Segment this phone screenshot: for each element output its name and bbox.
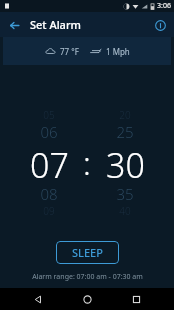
- staticText: 3:06: [157, 1, 171, 11]
- button[interactable]: Home: [76, 288, 98, 310]
- staticText: 09: [43, 204, 55, 218]
- button[interactable]: 20: [94, 108, 156, 218]
- staticText: 1 Mph: [106, 46, 130, 57]
- staticText: 25: [116, 122, 134, 142]
- button[interactable]: Back: [27, 288, 49, 310]
- button[interactable]: Info: [150, 15, 170, 35]
- staticText: 05: [43, 108, 55, 122]
- staticText: 08: [40, 184, 58, 204]
- staticText: 06: [40, 122, 58, 142]
- button[interactable]: SLEEP: [56, 241, 119, 264]
- button[interactable]: Back: [4, 15, 24, 35]
- button[interactable]: Recents: [125, 288, 147, 310]
- staticText: SLEEP: [72, 245, 103, 260]
- staticText: 40: [119, 204, 131, 218]
- staticText: 30: [106, 142, 145, 184]
- staticText: 20: [119, 108, 131, 122]
- staticText: 77 °F: [60, 46, 79, 57]
- button[interactable]: 05: [18, 108, 80, 218]
- staticText: 07: [30, 142, 69, 184]
- staticText: 35: [116, 184, 134, 204]
- staticText: Alarm range: 07:00 am - 07:30 am: [32, 272, 143, 282]
- staticText: Set Alarm: [30, 17, 81, 32]
- staticText: :: [83, 141, 91, 185]
